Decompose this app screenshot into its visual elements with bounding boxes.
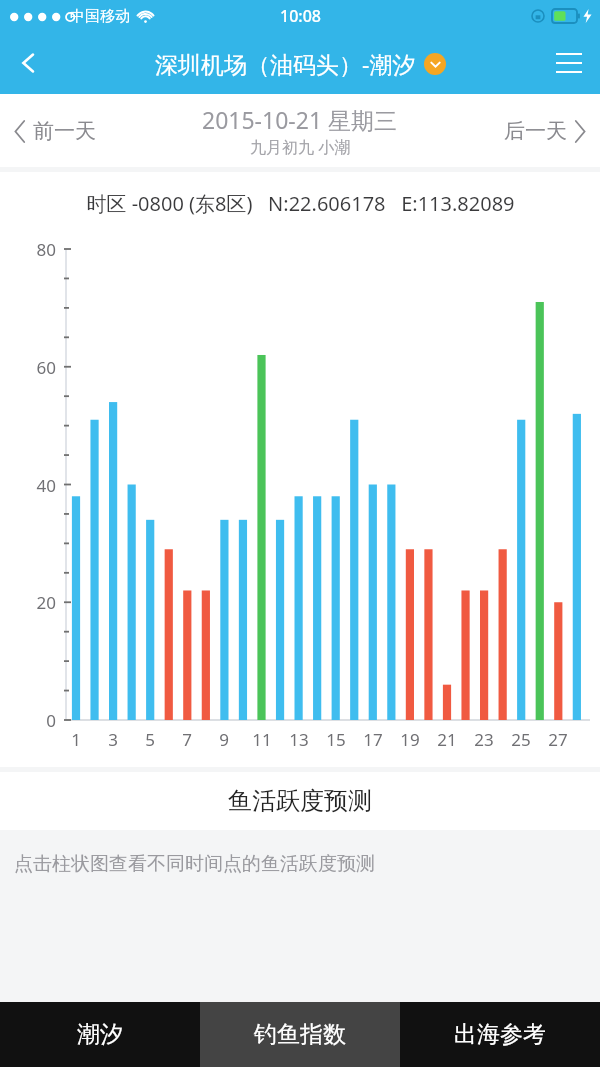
staticText: 23 — [469, 728, 499, 751]
staticText: 点击柱状图查看不同时间点的鱼活跃度预测 — [14, 852, 375, 876]
staticText: 鱼活跃度预测 — [228, 786, 372, 816]
button[interactable]: 出海参考 — [400, 1002, 600, 1067]
staticText: 25 — [506, 728, 536, 751]
staticText: 10:08 — [280, 5, 321, 27]
staticText: 20 — [0, 591, 56, 614]
button[interactable]: 钓鱼指数 — [200, 1002, 400, 1067]
staticText: 中国移动 — [70, 7, 130, 26]
staticText: 27 — [543, 728, 573, 751]
staticText: 九月初九 小潮 — [250, 136, 351, 158]
button[interactable]: 深圳机场（油码头）-潮汐 — [155, 48, 446, 79]
staticText: 前一天 — [33, 118, 96, 144]
staticText: 40 — [0, 474, 56, 497]
staticText: 0 — [0, 709, 56, 732]
staticText: 钓鱼指数 — [254, 1020, 346, 1049]
staticText: 时区 -0800 (东8区) N:22.606178 E:113.82089 — [86, 190, 515, 217]
staticText: 3 — [98, 728, 128, 751]
staticText: 19 — [395, 728, 425, 751]
button[interactable]: 潮汐 — [0, 1002, 200, 1067]
staticText: 15 — [321, 728, 351, 751]
staticText: 1 — [61, 728, 91, 751]
staticText: 后一天 — [504, 118, 567, 144]
staticText: 13 — [284, 728, 314, 751]
staticText: 2015-10-21 星期三 — [202, 104, 398, 135]
staticText: 潮汐 — [77, 1020, 123, 1049]
staticText: 5 — [135, 728, 165, 751]
button[interactable]: 后一天 — [504, 118, 586, 144]
staticText: 9 — [209, 728, 239, 751]
button[interactable]: Menu — [538, 32, 600, 94]
button[interactable]: Back — [0, 34, 58, 92]
staticText: 60 — [0, 356, 56, 379]
staticText: 80 — [0, 238, 56, 261]
staticText: 17 — [358, 728, 388, 751]
staticText: 11 — [247, 728, 277, 751]
staticText: 出海参考 — [454, 1020, 546, 1049]
staticText: 21 — [432, 728, 462, 751]
staticText: 7 — [172, 728, 202, 751]
staticText: 深圳机场（油码头）-潮汐 — [155, 48, 416, 79]
button[interactable]: 前一天 — [14, 118, 96, 144]
